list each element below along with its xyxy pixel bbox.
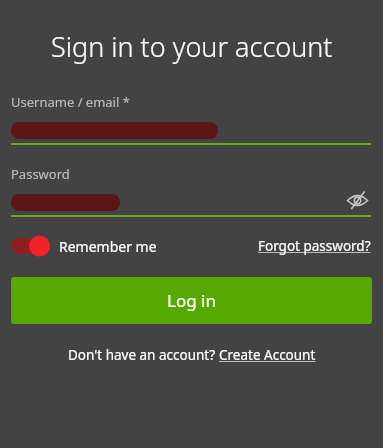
staticText: Password (11, 165, 70, 183)
staticText: Log in (167, 289, 216, 312)
staticText: Create Account (219, 346, 316, 364)
staticText: Remember me (59, 237, 157, 256)
button[interactable]: Remember me (11, 235, 157, 257)
button[interactable]: Show password (343, 191, 371, 210)
button[interactable]: Forgot password? (258, 237, 371, 255)
button[interactable] (11, 121, 371, 140)
button[interactable]: Log in (11, 277, 372, 324)
staticText: Forgot password? (258, 237, 371, 255)
staticText: Sign in to your account (51, 28, 333, 65)
button[interactable]: Create Account (219, 346, 316, 364)
staticText: Don't have an account? (68, 346, 219, 364)
staticText: Username / email * (11, 93, 130, 111)
